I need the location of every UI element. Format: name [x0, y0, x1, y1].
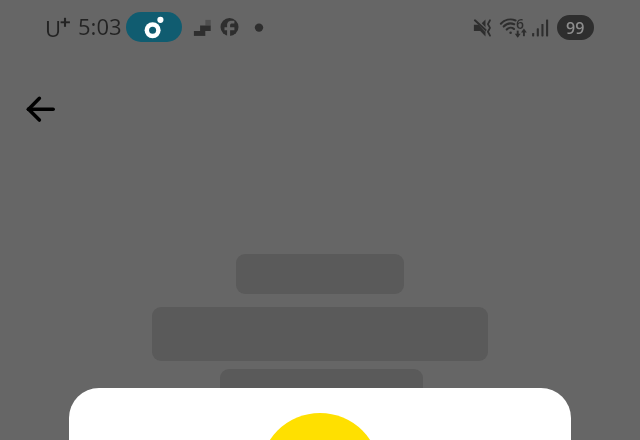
staticText: 5:03: [78, 11, 122, 41]
button[interactable]: Back: [17, 86, 64, 133]
button[interactable]: Camera in use: [126, 12, 182, 42]
button[interactable]: Dismiss: [0, 0, 640, 440]
button[interactable]: Bottom sheet: [69, 388, 571, 440]
staticText: 6: [516, 14, 525, 33]
staticText: 99: [566, 17, 585, 39]
staticText: U: [45, 13, 62, 43]
